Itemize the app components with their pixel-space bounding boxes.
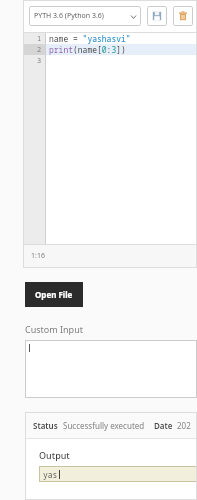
- staticText: Successfully executed: [63, 420, 145, 431]
- staticText: Open File: [35, 289, 73, 300]
- button[interactable]: yas: [39, 466, 197, 482]
- staticText: 202: [177, 420, 191, 431]
- staticText: 3: [37, 56, 42, 66]
- staticText: 1: [37, 34, 42, 44]
- staticText: Date: [154, 420, 173, 431]
- staticText: PYTH 3.6 (Python 3.6): [34, 11, 104, 21]
- button[interactable]: Delete: [173, 6, 193, 26]
- button[interactable]: Open File: [25, 282, 83, 307]
- staticText: Status: [33, 420, 58, 431]
- button[interactable]: [25, 340, 197, 398]
- staticText: Output: [39, 449, 70, 461]
- staticText: 2: [37, 45, 42, 55]
- button[interactable]: Save: [147, 6, 167, 26]
- staticText: yas: [43, 469, 58, 480]
- staticText: print(name[0:3]): [49, 44, 126, 55]
- staticText: Custom Input: [25, 323, 83, 335]
- button[interactable]: PYTH 3.6 (Python 3.6): [29, 6, 141, 26]
- staticText: name = "yashasvi": [49, 33, 131, 44]
- staticText: 1:16: [31, 251, 45, 261]
